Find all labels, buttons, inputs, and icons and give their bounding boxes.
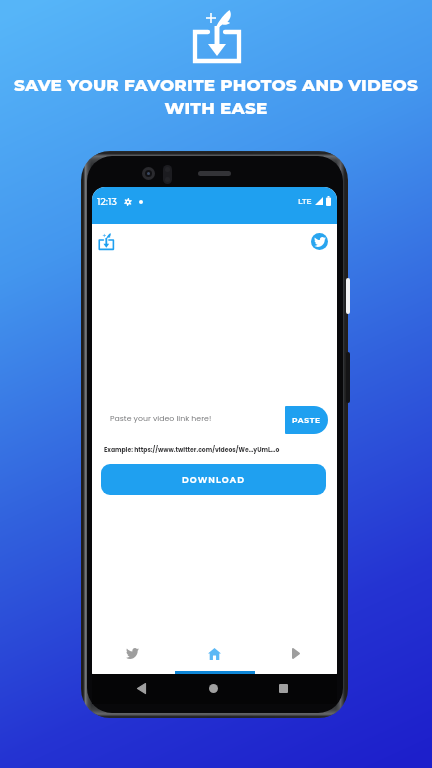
- button[interactable]: DOWNLOAD: [101, 464, 326, 495]
- button[interactable]: Home: [205, 680, 222, 697]
- button[interactable]: Back: [133, 680, 150, 697]
- button[interactable]: Home: [173, 628, 255, 674]
- button[interactable]: Twitter: [92, 628, 173, 674]
- staticText: Example: https://www.twitter.com/videos/…: [104, 446, 280, 455]
- button[interactable]: Twitter: [311, 233, 328, 250]
- staticText: LTE: [298, 197, 312, 206]
- button[interactable]: Recent apps: [275, 680, 292, 697]
- button[interactable]: Videos: [255, 628, 337, 674]
- staticText: DOWNLOAD: [182, 475, 246, 485]
- staticText: PASTE: [292, 416, 321, 425]
- button[interactable]: Video downloader: [97, 231, 115, 249]
- staticText: SAVE YOUR FAVORITE PHOTOS AND VIDEOS WIT…: [0, 75, 432, 118]
- button[interactable]: PASTE: [285, 406, 328, 434]
- staticText: Paste your video link here!: [110, 413, 212, 424]
- staticText: 12:13: [97, 196, 117, 207]
